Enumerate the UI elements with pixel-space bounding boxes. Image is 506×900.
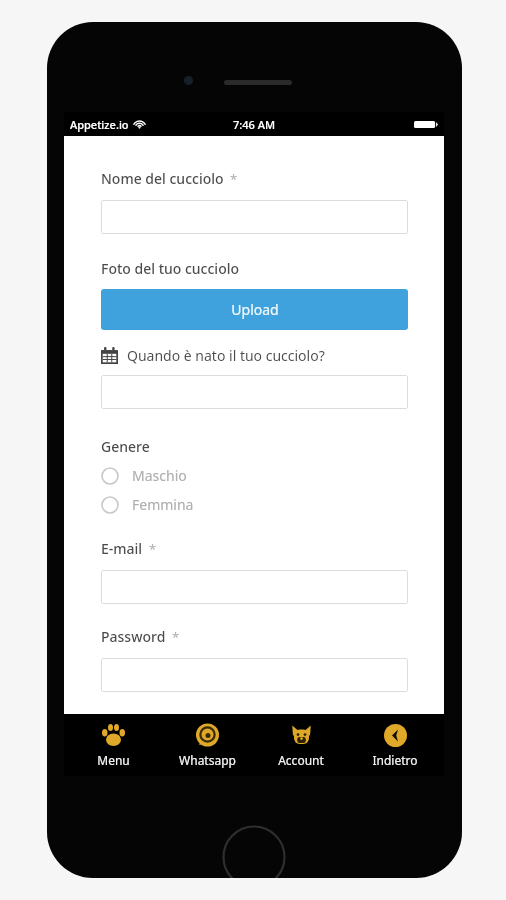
button[interactable]: Whatsapp xyxy=(162,717,252,773)
button[interactable]: Femmina xyxy=(101,495,194,514)
staticText: Nome del cucciolo xyxy=(101,169,224,188)
staticText: Menu xyxy=(97,752,130,768)
staticText: Account xyxy=(278,752,324,768)
button[interactable] xyxy=(101,200,408,234)
staticText: Quando è nato il tuo cucciolo? xyxy=(127,346,325,365)
staticText: * xyxy=(172,628,180,646)
staticText: * xyxy=(230,170,238,188)
staticText: * xyxy=(149,540,157,558)
staticText: Genere xyxy=(101,437,150,456)
button[interactable] xyxy=(101,375,408,409)
staticText: 7:46 AM xyxy=(233,117,276,132)
staticText: E-mail xyxy=(101,539,143,558)
button[interactable]: Account xyxy=(256,717,346,773)
button[interactable] xyxy=(101,658,408,692)
staticText: Upload xyxy=(231,300,279,319)
staticText: Maschio xyxy=(132,466,187,485)
staticText: Femmina xyxy=(132,495,194,514)
button[interactable]: Maschio xyxy=(101,466,187,485)
button[interactable]: Menu xyxy=(68,717,158,773)
staticText: Password xyxy=(101,627,166,646)
button[interactable]: Upload xyxy=(101,289,408,330)
staticText: Foto del tuo cucciolo xyxy=(101,259,240,278)
staticText: Indietro xyxy=(372,752,418,768)
staticText: Appetize.io xyxy=(70,117,129,132)
button[interactable] xyxy=(101,570,408,604)
staticText: Whatsapp xyxy=(179,752,236,768)
button[interactable]: Indietro, back xyxy=(350,717,440,773)
